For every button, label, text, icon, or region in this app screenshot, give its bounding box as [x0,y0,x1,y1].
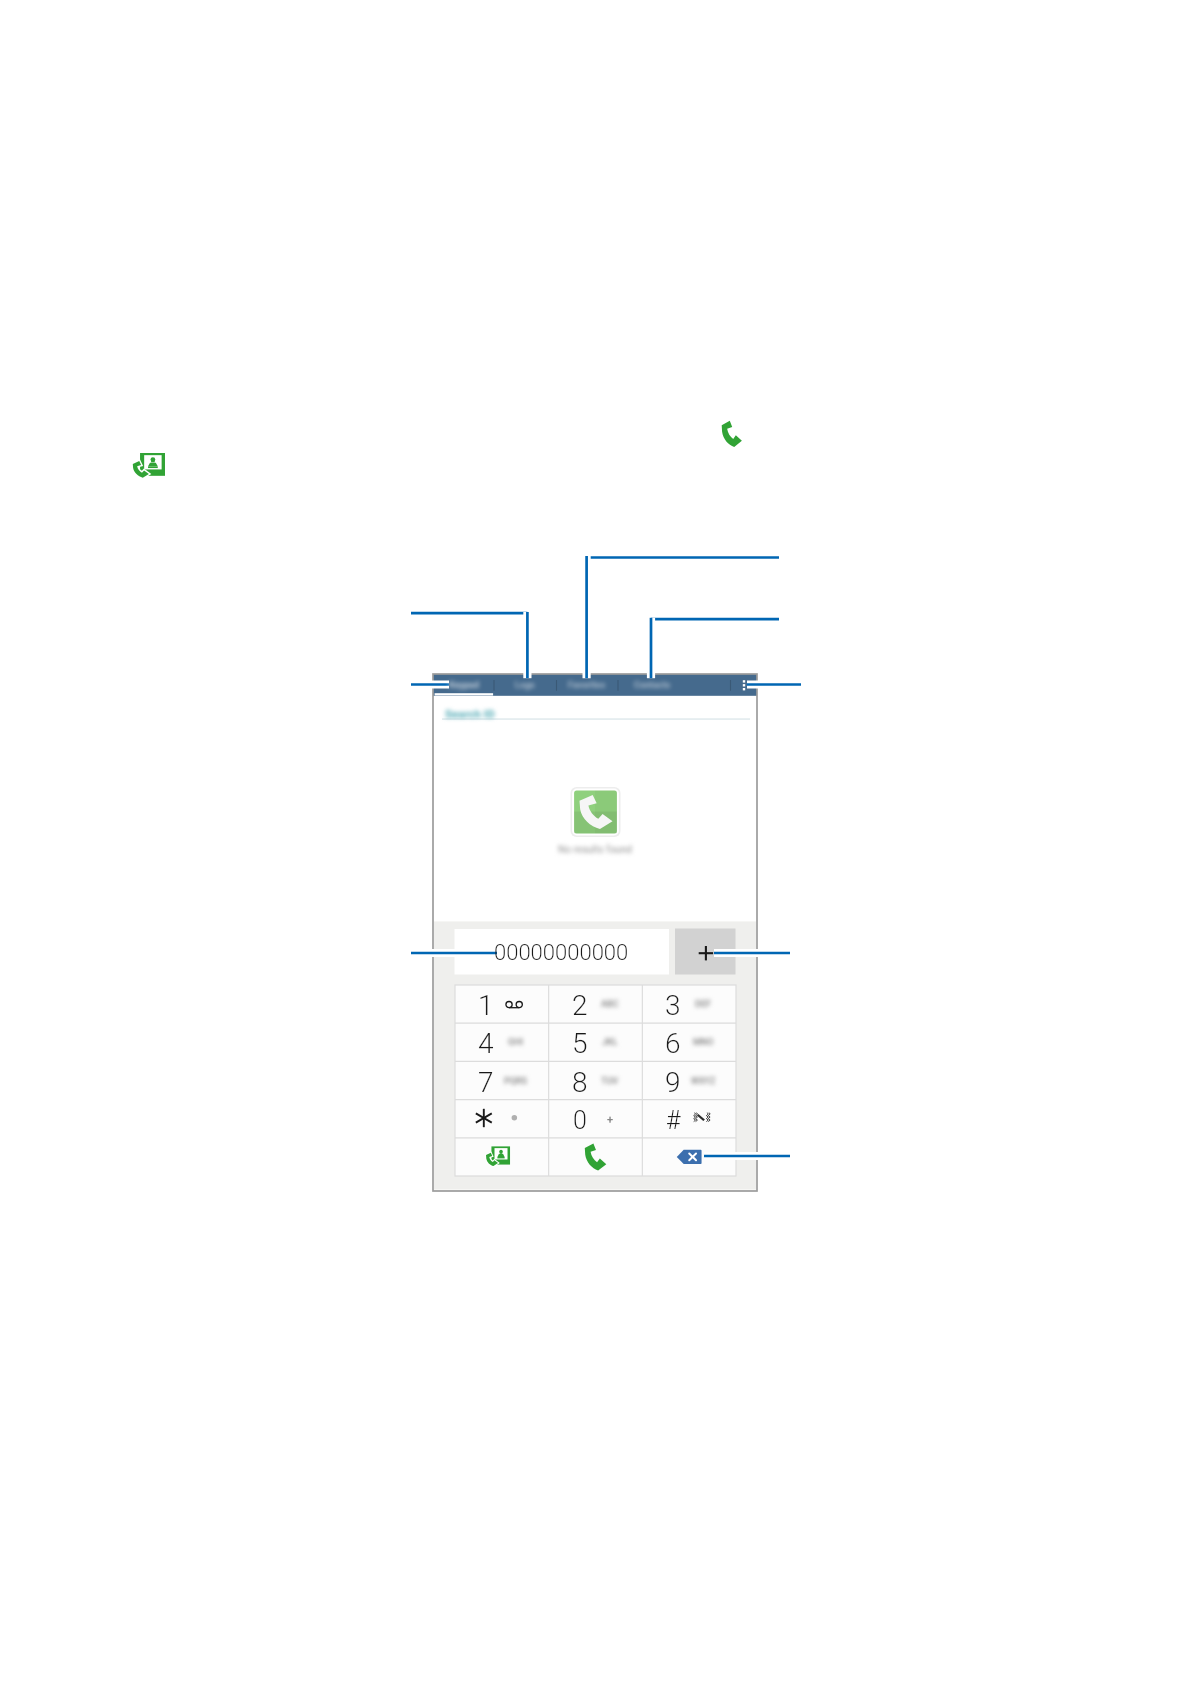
staticText: Search ID [445,707,495,720]
staticText: No results found [558,844,632,856]
button[interactable]: Add plus [675,929,736,975]
staticText: 4 [478,1027,494,1060]
staticText: ABC [601,999,619,1010]
button[interactable]: Key 6 [642,1023,736,1061]
button[interactable]: Key 8 [549,1061,643,1099]
staticText: 7 [478,1066,494,1099]
staticText: 1 [478,989,494,1022]
staticText: 00000000000 [494,940,629,966]
staticText: MNO [693,1037,714,1048]
button[interactable]: Key 0 [549,1100,643,1138]
button[interactable]: Logs [494,674,556,696]
staticText: Favorites [568,680,606,691]
staticText: + [607,1113,614,1126]
staticText: # [666,1106,681,1135]
button[interactable]: Favorites [556,674,618,696]
button[interactable]: Key 7 [455,1061,549,1099]
button[interactable]: Keypad [433,674,494,696]
button[interactable]: Key 3 [642,985,736,1023]
button[interactable]: Key 1 [455,985,549,1023]
staticText: Logs [515,680,535,691]
button[interactable]: Add to contacts [455,1138,548,1176]
staticText: TUV [601,1076,619,1087]
staticText: DEF [695,999,711,1010]
button[interactable]: Contacts [618,674,687,696]
button[interactable]: Call [548,1138,642,1176]
staticText: 5 [572,1027,588,1060]
button[interactable]: Key 4 [455,1023,549,1061]
staticText: PQRS [504,1076,528,1087]
staticText: Keypad [449,680,479,691]
button[interactable]: Key 9 [642,1061,736,1099]
staticText: Contacts [634,680,671,691]
button[interactable]: Key pound [642,1100,736,1138]
staticText: JKL [602,1037,618,1048]
staticText: 9 [665,1066,681,1099]
button[interactable]: More options [736,676,754,694]
staticText: 2 [572,989,588,1022]
staticText: 3 [665,989,681,1022]
button[interactable]: Key 5 [549,1023,643,1061]
button[interactable]: Phone number field [455,929,669,975]
staticText: GHI [508,1037,524,1048]
staticText: 0 [573,1106,587,1135]
button[interactable]: Key star [455,1100,549,1138]
staticText: WXYZ [691,1076,716,1087]
button[interactable]: Key 2 [549,985,643,1023]
button[interactable]: Backspace [642,1138,736,1176]
staticText: 8 [572,1066,588,1099]
staticText: 6 [665,1027,681,1060]
